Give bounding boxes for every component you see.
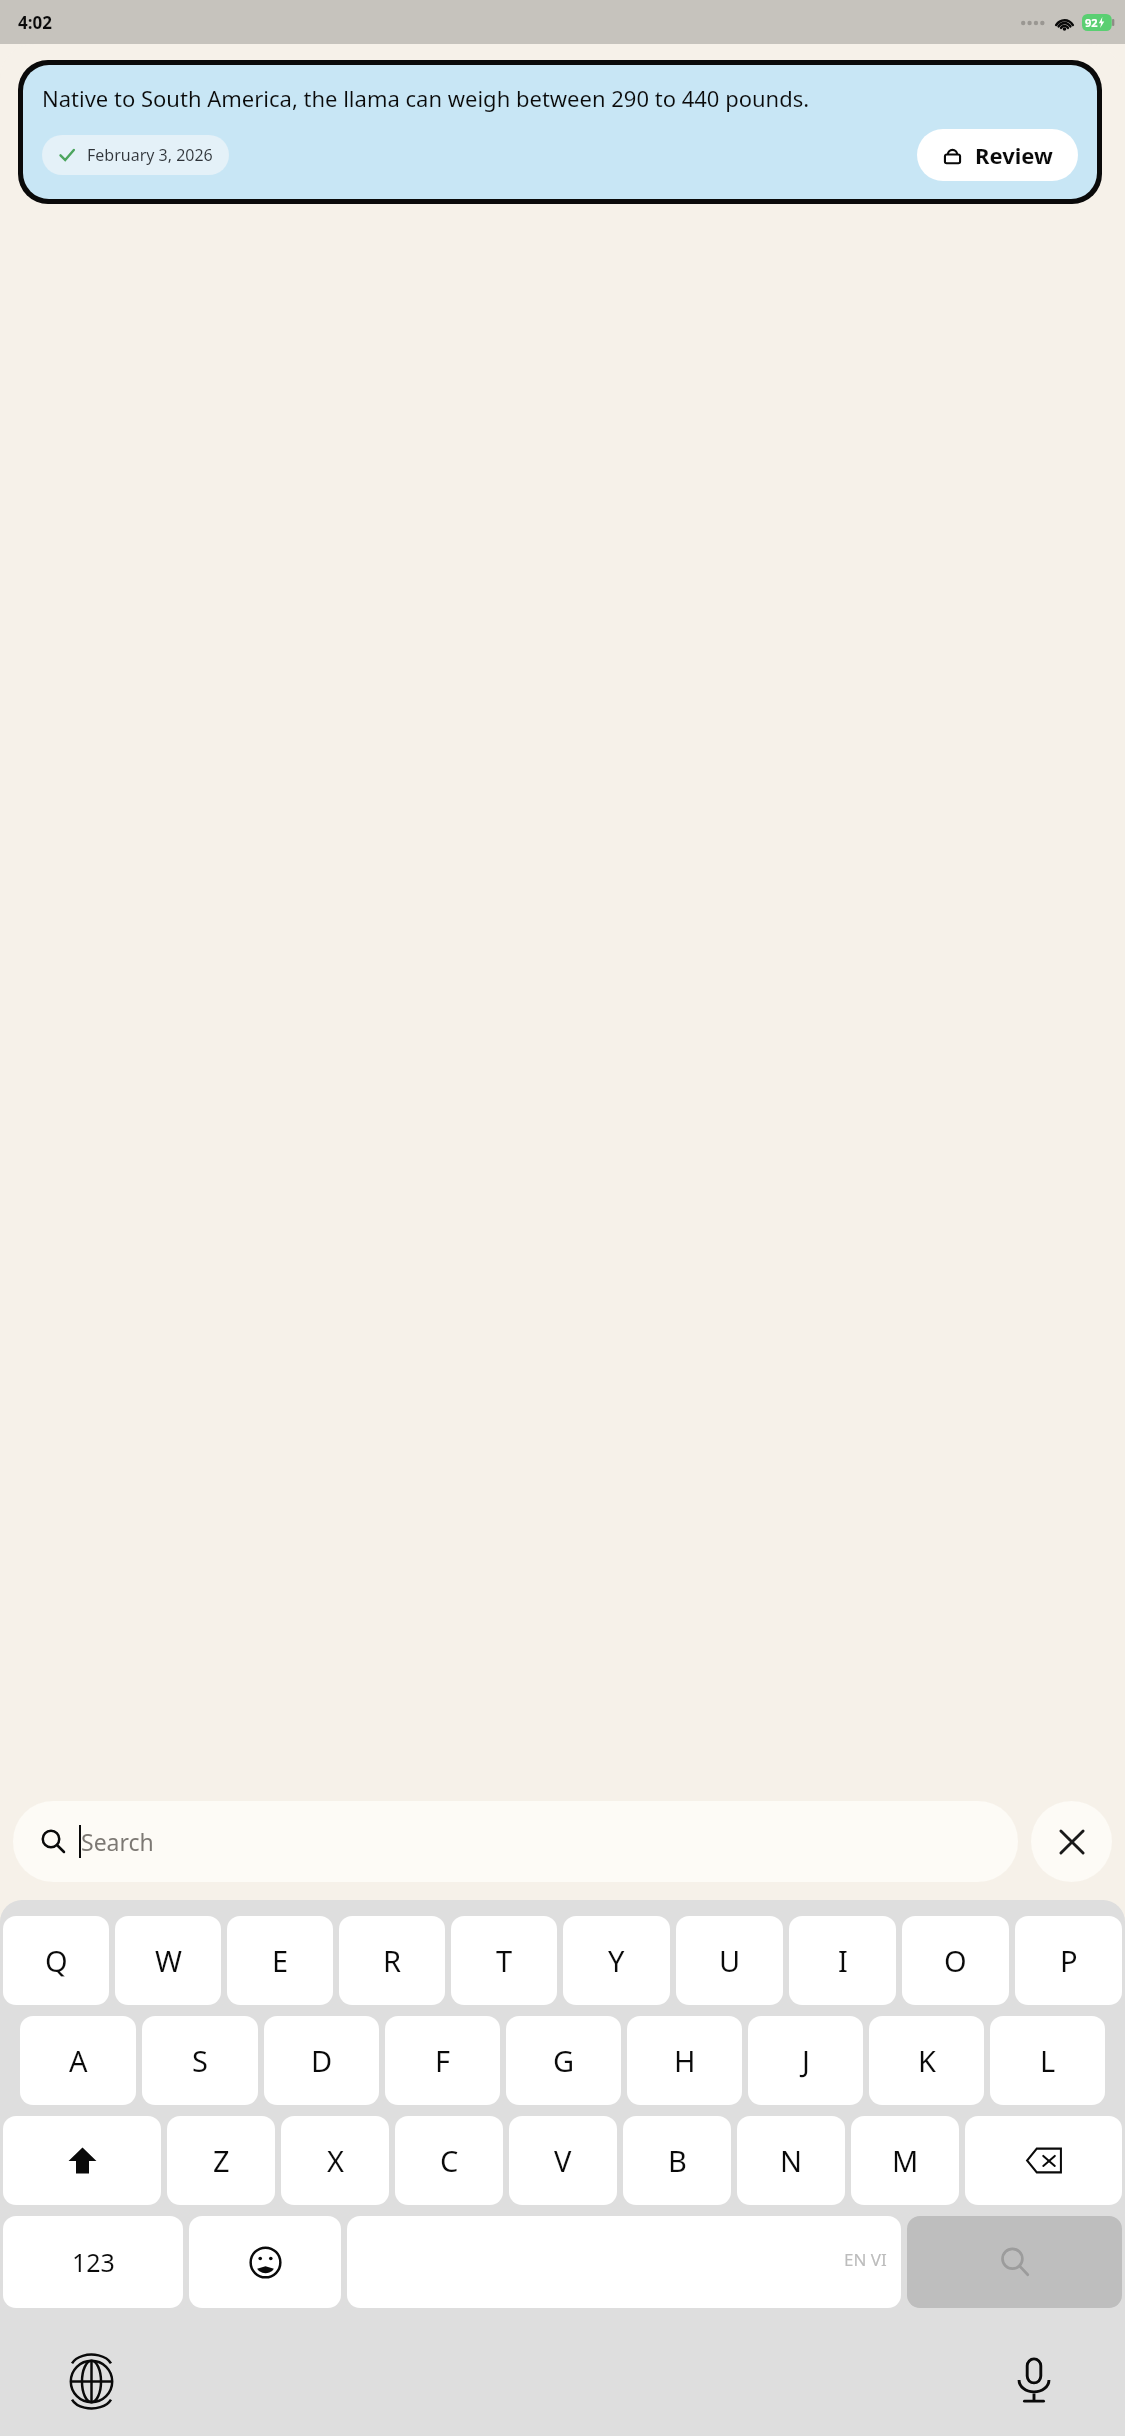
- button[interactable]: Review: [917, 129, 1078, 181]
- button[interactable]: G: [506, 2016, 621, 2105]
- button[interactable]: O: [902, 1916, 1009, 2005]
- staticText: V: [554, 2141, 572, 2180]
- button[interactable]: Native to South America, the llama can w…: [23, 65, 1097, 199]
- button[interactable]: Space: [347, 2216, 901, 2308]
- button[interactable]: Emoji: [189, 2216, 341, 2308]
- button[interactable]: Z: [167, 2116, 275, 2205]
- button[interactable]: P: [1015, 1916, 1122, 2005]
- button[interactable]: E: [227, 1916, 333, 2005]
- staticText: 123: [72, 2245, 115, 2279]
- staticText: C: [440, 2141, 459, 2180]
- button[interactable]: L: [990, 2016, 1105, 2105]
- staticText: H: [674, 2041, 696, 2080]
- button[interactable]: A: [20, 2016, 136, 2105]
- staticText: 92: [1085, 15, 1098, 30]
- staticText: Q: [45, 1941, 68, 1980]
- button[interactable]: F: [385, 2016, 500, 2105]
- staticText: J: [802, 2041, 810, 2080]
- button[interactable]: V: [509, 2116, 617, 2205]
- staticText: I: [838, 1941, 848, 1980]
- staticText: K: [918, 2041, 936, 2080]
- button[interactable]: H: [627, 2016, 742, 2105]
- button[interactable]: Change language: [55, 2345, 127, 2417]
- staticText: Review: [975, 140, 1053, 170]
- staticText: EN VI: [844, 2248, 887, 2271]
- button[interactable]: Q: [3, 1916, 109, 2005]
- button[interactable]: Close search: [1031, 1801, 1112, 1882]
- button[interactable]: B: [623, 2116, 731, 2205]
- staticText: A: [69, 2041, 88, 2080]
- button[interactable]: N: [737, 2116, 845, 2205]
- button[interactable]: K: [869, 2016, 984, 2105]
- button[interactable]: X: [281, 2116, 389, 2205]
- staticText: M: [892, 2141, 919, 2180]
- staticText: W: [155, 1941, 182, 1980]
- staticText: Z: [213, 2141, 230, 2180]
- staticText: S: [192, 2041, 208, 2080]
- staticText: O: [944, 1941, 967, 1980]
- staticText: X: [327, 2141, 344, 2180]
- button[interactable]: T: [451, 1916, 557, 2005]
- staticText: P: [1060, 1941, 1078, 1980]
- staticText: L: [1040, 2041, 1056, 2080]
- staticText: N: [780, 2141, 803, 2180]
- button[interactable]: M: [851, 2116, 959, 2205]
- staticText: Native to South America, the llama can w…: [42, 83, 810, 113]
- staticText: R: [383, 1941, 402, 1980]
- staticText: D: [311, 2041, 333, 2080]
- button[interactable]: Shift: [3, 2116, 161, 2205]
- button[interactable]: February 3, 2026: [42, 135, 229, 175]
- button[interactable]: Search: [13, 1801, 1018, 1882]
- button[interactable]: Y: [563, 1916, 670, 2005]
- button[interactable]: R: [339, 1916, 445, 2005]
- staticText: U: [719, 1941, 741, 1980]
- button[interactable]: I: [789, 1916, 896, 2005]
- button[interactable]: S: [142, 2016, 258, 2105]
- staticText: T: [496, 1941, 513, 1980]
- button[interactable]: D: [264, 2016, 379, 2105]
- staticText: B: [668, 2141, 687, 2180]
- staticText: G: [553, 2041, 575, 2080]
- button[interactable]: W: [115, 1916, 221, 2005]
- button[interactable]: 123: [3, 2216, 183, 2308]
- button[interactable]: U: [676, 1916, 783, 2005]
- button[interactable]: Voice input: [998, 2345, 1070, 2417]
- staticText: 4:02: [18, 11, 52, 34]
- button[interactable]: Backspace: [965, 2116, 1122, 2205]
- button[interactable]: C: [395, 2116, 503, 2205]
- staticText: Search: [81, 1826, 154, 1857]
- button[interactable]: J: [748, 2016, 863, 2105]
- staticText: February 3, 2026: [87, 144, 213, 166]
- staticText: Y: [608, 1941, 625, 1980]
- button[interactable]: Search: [907, 2216, 1122, 2308]
- staticText: E: [272, 1941, 289, 1980]
- staticText: F: [435, 2041, 451, 2080]
